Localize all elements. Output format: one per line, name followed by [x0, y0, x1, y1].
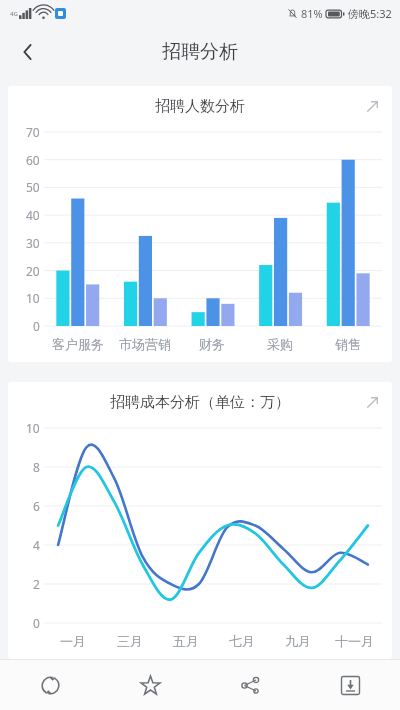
- staticText: 市场营销: [119, 336, 171, 352]
- staticText: 4G: [10, 10, 18, 18]
- staticText: 20: [26, 263, 40, 279]
- staticText: 采购: [267, 336, 293, 352]
- staticText: 傍晚5:32: [348, 6, 392, 21]
- staticText: 60: [26, 152, 40, 168]
- staticText: 三月: [117, 633, 143, 649]
- button[interactable]: Expand chart: [358, 92, 386, 120]
- staticText: 销售: [335, 336, 361, 352]
- staticText: 70: [26, 124, 40, 140]
- staticText: 招聘成本分析（单位：万）: [110, 393, 290, 412]
- staticText: 五月: [173, 633, 199, 649]
- staticText: 40: [26, 207, 40, 223]
- staticText: 2: [33, 576, 40, 592]
- staticText: 0: [33, 318, 40, 334]
- button[interactable]: 招聘人数分析: [8, 86, 392, 362]
- button[interactable]: Favorite: [100, 660, 200, 710]
- staticText: 一月: [60, 633, 86, 649]
- staticText: 招聘分析: [162, 40, 238, 64]
- staticText: 10: [26, 420, 40, 436]
- staticText: 九月: [285, 633, 311, 649]
- staticText: 4: [33, 537, 40, 553]
- staticText: 十一月: [335, 633, 374, 649]
- staticText: 10: [26, 290, 40, 306]
- staticText: 8: [33, 459, 40, 475]
- staticText: 招聘人数分析: [155, 97, 245, 116]
- staticText: 0: [33, 615, 40, 631]
- button[interactable]: 招聘成本分析（单位：万）: [8, 382, 392, 659]
- staticText: 30: [26, 235, 40, 251]
- staticText: 七月: [229, 633, 255, 649]
- button[interactable]: Download: [300, 660, 400, 710]
- button[interactable]: Refresh: [0, 660, 100, 710]
- button[interactable]: Back: [6, 30, 50, 74]
- staticText: 财务: [199, 336, 225, 352]
- button[interactable]: Share: [200, 660, 300, 710]
- staticText: 客户服务: [52, 336, 104, 352]
- button[interactable]: Expand chart: [358, 388, 386, 416]
- staticText: 6: [33, 498, 40, 514]
- staticText: 50: [26, 179, 40, 195]
- staticText: 81%: [301, 6, 323, 21]
